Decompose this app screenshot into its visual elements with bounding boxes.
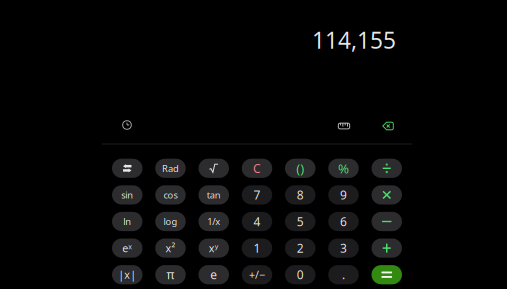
staticText: % (338, 159, 349, 177)
button[interactable]: eˣ (112, 238, 142, 258)
staticText: 4 (253, 213, 260, 229)
button[interactable]: . (328, 265, 359, 284)
staticText: 3 (340, 240, 347, 256)
button[interactable]: Square root (198, 159, 229, 178)
button[interactable]: log (155, 212, 186, 231)
staticText: () (296, 159, 304, 177)
staticText: 1/x (207, 215, 220, 228)
staticText: ln (123, 215, 131, 228)
staticText: tan (207, 189, 221, 201)
button[interactable]: 2 (285, 238, 315, 258)
button[interactable]: |x| (112, 265, 142, 284)
button[interactable]: Rad (155, 159, 186, 178)
staticText: 9 (340, 187, 347, 203)
staticText: 2 (297, 240, 304, 256)
button[interactable]: Subtract (371, 212, 402, 231)
button[interactable]: C (242, 159, 272, 178)
button[interactable]: xʸ (198, 238, 229, 258)
button[interactable]: Add (371, 238, 402, 258)
button[interactable]: 1/x (198, 212, 229, 231)
staticText: . (342, 267, 345, 283)
staticText: x² (165, 241, 175, 255)
button[interactable]: 8 (285, 185, 315, 204)
staticText: xʸ (209, 241, 219, 255)
button[interactable]: History (114, 113, 140, 137)
staticText: +/− (249, 268, 265, 282)
staticText: 0 (297, 267, 304, 283)
button[interactable]: sin (112, 185, 142, 204)
staticText: cos (163, 189, 177, 201)
button[interactable]: π (155, 265, 186, 284)
button[interactable]: 6 (328, 212, 359, 231)
button[interactable]: % (328, 159, 359, 178)
staticText: |x| (118, 268, 136, 282)
button[interactable]: 7 (242, 185, 272, 204)
button[interactable]: +/− (242, 265, 272, 284)
staticText: e (210, 267, 217, 283)
staticText: 8 (297, 187, 304, 203)
button[interactable]: e (198, 265, 229, 284)
button[interactable]: Swap (112, 159, 142, 178)
staticText: Rad (162, 162, 179, 174)
button[interactable]: 9 (328, 185, 359, 204)
button[interactable]: 1 (242, 238, 272, 258)
staticText: 6 (340, 213, 347, 229)
button[interactable]: Convert units (331, 114, 357, 138)
button[interactable]: Equals (371, 265, 402, 284)
staticText: 114,155 (312, 25, 396, 55)
staticText: log (163, 215, 177, 228)
staticText: sin (121, 189, 133, 201)
button[interactable]: () (285, 159, 315, 178)
button[interactable]: 4 (242, 212, 272, 231)
button[interactable]: tan (198, 185, 229, 204)
button[interactable]: Multiply (371, 185, 402, 204)
staticText: π (166, 267, 174, 283)
staticText: 7 (253, 187, 260, 203)
button[interactable]: ln (112, 212, 142, 231)
staticText: eˣ (122, 241, 132, 255)
staticText: 5 (297, 213, 304, 229)
button[interactable]: cos (155, 185, 186, 204)
button[interactable]: 5 (285, 212, 315, 231)
button[interactable]: 0 (285, 265, 315, 284)
staticText: C (253, 160, 261, 176)
button[interactable]: 3 (328, 238, 359, 258)
button[interactable]: x² (155, 238, 186, 258)
staticText: 1 (253, 240, 260, 256)
button[interactable]: Divide (371, 159, 402, 178)
button[interactable]: Delete (375, 114, 401, 138)
